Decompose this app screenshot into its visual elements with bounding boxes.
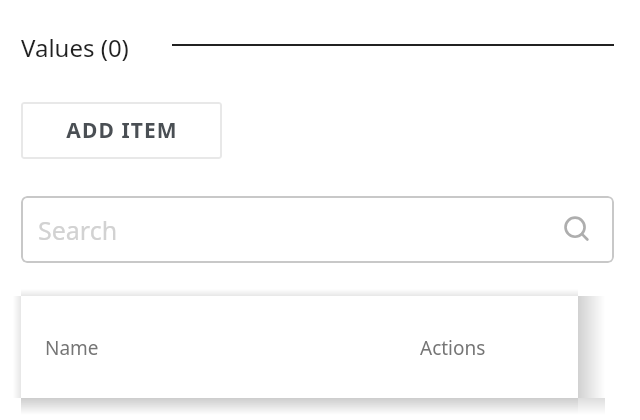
staticText: Search: [38, 213, 118, 247]
button[interactable]: Name: [45, 335, 99, 361]
button[interactable]: Search: [560, 213, 594, 247]
staticText: Values (0): [21, 31, 129, 64]
staticText: ADD ITEM: [66, 116, 178, 145]
button[interactable]: Search: [21, 196, 614, 263]
button[interactable]: Actions: [420, 335, 486, 361]
button[interactable]: ADD ITEM: [21, 102, 222, 159]
